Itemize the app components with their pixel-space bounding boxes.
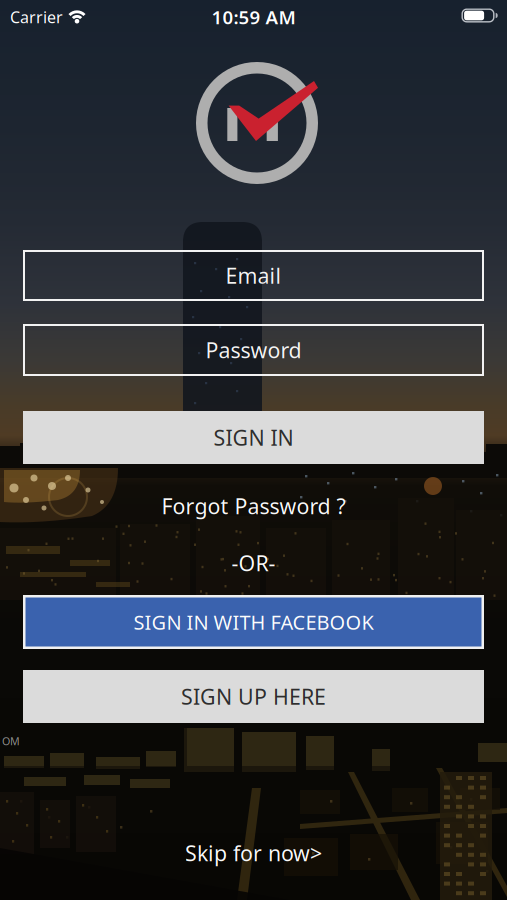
staticText: SIGN IN: [213, 423, 293, 452]
button[interactable]: Skip for now>: [185, 839, 322, 867]
staticText: Forgot Password ?: [161, 492, 345, 520]
staticText: Password: [205, 336, 301, 364]
button[interactable]: SIGN UP HERE: [23, 670, 484, 723]
button[interactable]: SIGN IN WITH FACEBOOK: [23, 595, 484, 649]
button[interactable]: Email: [23, 250, 484, 301]
staticText: Skip for now>: [185, 839, 322, 867]
button[interactable]: SIGN IN: [23, 411, 484, 464]
staticText: SIGN UP HERE: [181, 682, 326, 711]
staticText: SIGN IN WITH FACEBOOK: [133, 609, 373, 635]
staticText: 10:59 AM: [211, 5, 295, 29]
button[interactable]: Forgot Password ?: [161, 492, 345, 520]
staticText: OM: [2, 734, 20, 748]
staticText: Carrier: [10, 6, 63, 28]
staticText: -OR-: [231, 549, 275, 577]
staticText: Email: [225, 261, 281, 290]
button[interactable]: Password: [23, 324, 484, 376]
